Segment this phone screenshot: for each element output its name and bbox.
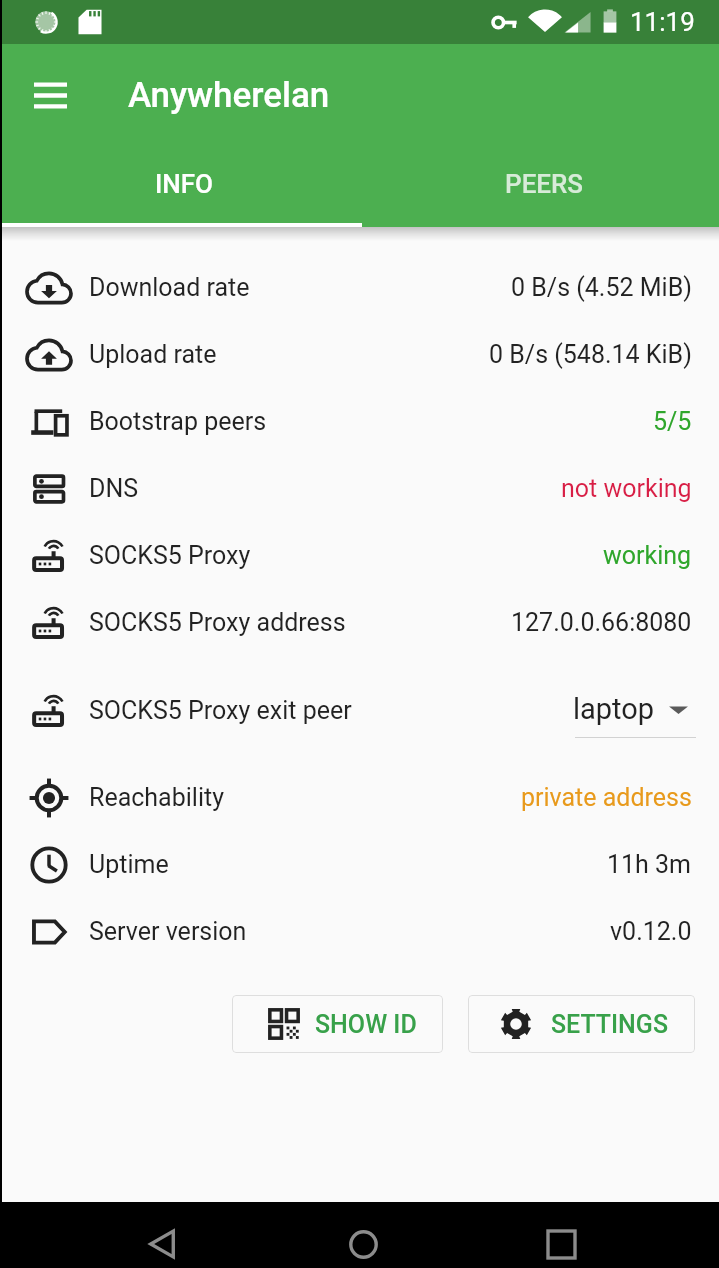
- staticText: v0.12.0: [610, 917, 692, 946]
- staticText: Server version: [89, 917, 247, 946]
- button[interactable]: Upload rate: [0, 321, 719, 388]
- button[interactable]: Back: [134, 1211, 190, 1268]
- staticText: 11:19: [630, 7, 695, 37]
- staticText: 11h 3m: [607, 850, 692, 879]
- staticText: 0 B/s (4.52 MiB): [511, 273, 692, 302]
- staticText: working: [603, 541, 692, 570]
- staticText: SOCKS5 Proxy: [89, 541, 251, 570]
- staticText: Upload rate: [89, 340, 217, 369]
- staticText: 5/5: [653, 407, 692, 436]
- staticText: DNS: [89, 474, 139, 503]
- staticText: Download rate: [89, 273, 250, 302]
- staticText: Uptime: [89, 850, 169, 879]
- button[interactable]: SOCKS5 Proxy: [0, 522, 719, 589]
- staticText: INFO: [155, 169, 214, 199]
- staticText: laptop: [573, 692, 655, 726]
- staticText: SETTINGS: [551, 1010, 668, 1039]
- button[interactable]: SOCKS5 Proxy exit peer: [0, 677, 719, 744]
- button[interactable]: PEERS: [364, 148, 719, 220]
- staticText: Anywherelan: [128, 75, 330, 116]
- button[interactable]: Download rate: [0, 254, 719, 321]
- button[interactable]: Server version: [0, 898, 719, 965]
- button[interactable]: SETTINGS: [468, 995, 695, 1053]
- staticText: Reachability: [89, 783, 224, 812]
- staticText: private address: [521, 783, 692, 812]
- button[interactable]: Reachability: [0, 764, 719, 831]
- staticText: Bootstrap peers: [89, 407, 267, 436]
- button[interactable]: SHOW ID: [232, 995, 443, 1053]
- button[interactable]: Open navigation menu: [14, 59, 86, 131]
- button[interactable]: Home: [335, 1211, 391, 1268]
- staticText: PEERS: [505, 169, 583, 199]
- button[interactable]: INFO: [5, 148, 364, 220]
- button[interactable]: Recent apps: [533, 1211, 589, 1268]
- button[interactable]: DNS: [0, 455, 719, 522]
- button[interactable]: laptop: [573, 692, 692, 737]
- button[interactable]: Bootstrap peers: [0, 388, 719, 455]
- staticText: not working: [561, 474, 692, 503]
- button[interactable]: SOCKS5 Proxy address: [0, 589, 719, 656]
- staticText: 127.0.0.66:8080: [511, 608, 692, 637]
- staticText: SHOW ID: [315, 1010, 417, 1039]
- staticText: SOCKS5 Proxy exit peer: [89, 696, 352, 725]
- button[interactable]: Uptime: [0, 831, 719, 898]
- staticText: SOCKS5 Proxy address: [89, 608, 346, 637]
- staticText: 0 B/s (548.14 KiB): [489, 340, 692, 369]
